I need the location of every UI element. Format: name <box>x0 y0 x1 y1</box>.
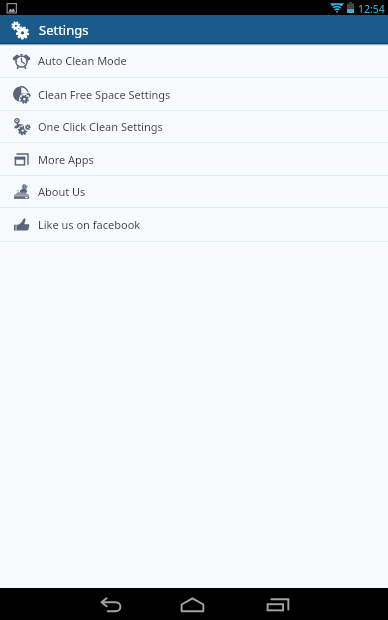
staticText: Like us on facebook <box>38 217 141 232</box>
button[interactable]: Settings <box>0 15 388 44</box>
button[interactable]: Recent apps <box>253 588 301 620</box>
button[interactable]: Home <box>168 588 216 620</box>
button[interactable]: More Apps <box>0 143 388 175</box>
button[interactable]: Back <box>87 588 135 620</box>
button[interactable]: Auto Clean Mode <box>0 44 388 77</box>
staticText: Auto Clean Mode <box>38 53 127 68</box>
staticText: One Click Clean Settings <box>38 119 163 134</box>
button[interactable]: Like us on facebook <box>0 208 388 241</box>
staticText: Clean Free Space Settings <box>38 87 171 102</box>
staticText: More Apps <box>38 152 94 167</box>
button[interactable]: Clean Free Space Settings <box>0 78 388 110</box>
button[interactable]: One Click Clean Settings <box>0 111 388 142</box>
staticText: 12:54 <box>358 2 385 15</box>
staticText: About Us <box>38 184 86 199</box>
staticText: Settings <box>39 21 89 39</box>
button[interactable]: About Us <box>0 176 388 207</box>
